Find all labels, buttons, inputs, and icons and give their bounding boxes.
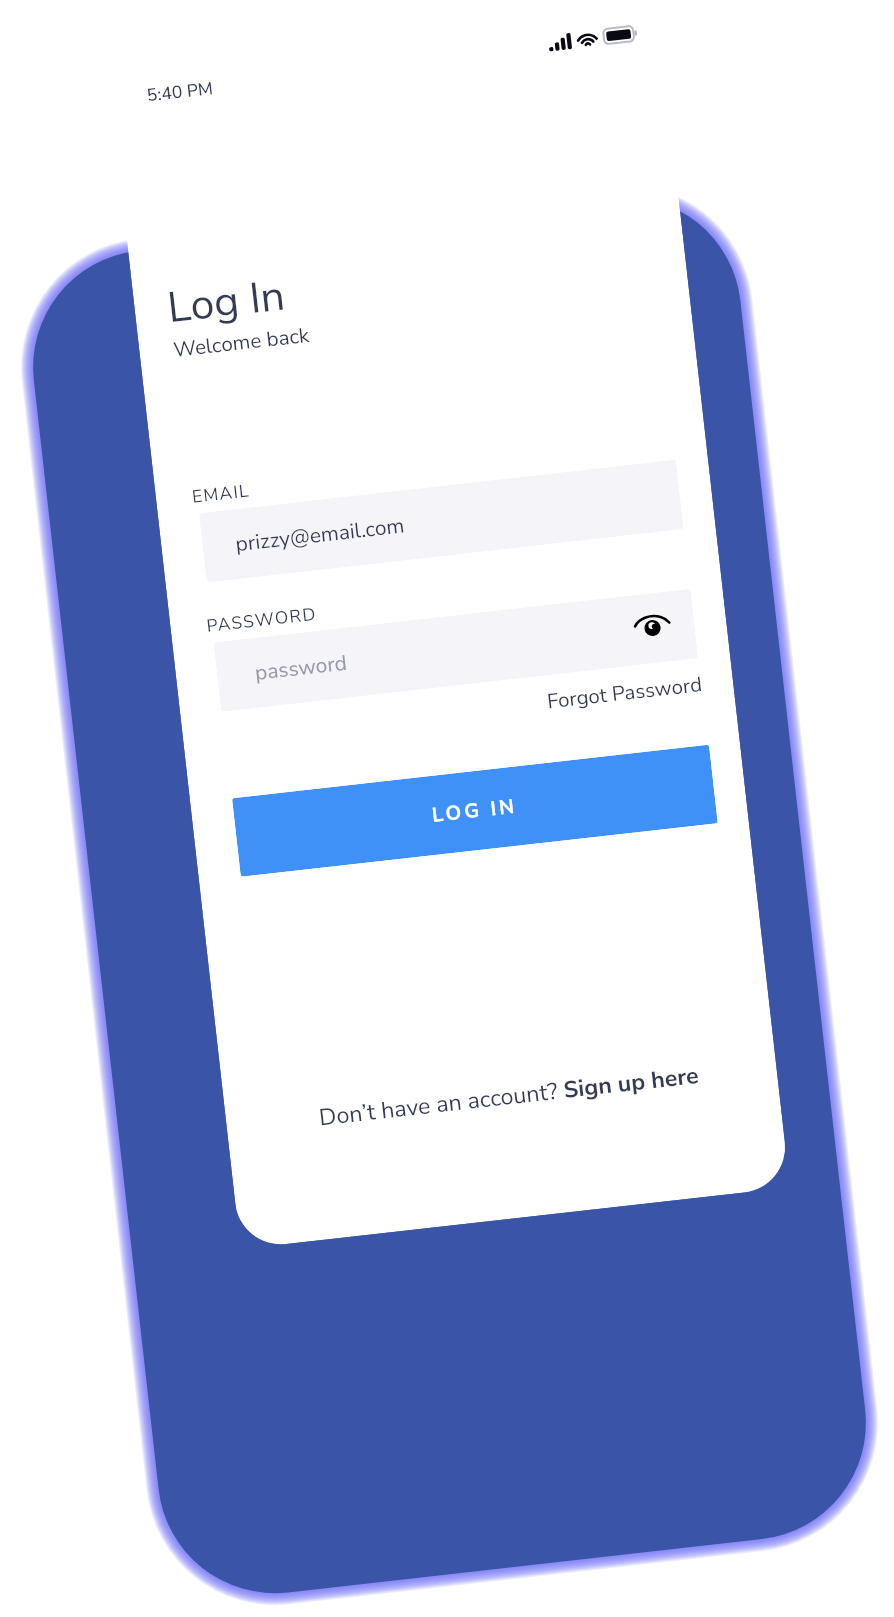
button[interactable]: Sign up here <box>562 1060 701 1107</box>
button[interactable]: prizzy@email.com <box>199 459 684 583</box>
staticText: Log In <box>164 266 288 337</box>
staticText: EMAIL <box>191 478 251 509</box>
staticText: Don’t have an account? <box>317 1075 565 1134</box>
button[interactable]: LOG IN <box>232 745 718 877</box>
staticText: password <box>253 649 349 688</box>
staticText: LOG IN <box>431 792 519 829</box>
staticText: prizzy@email.com <box>234 511 406 559</box>
staticText: 5:40 PM <box>145 76 215 107</box>
button[interactable]: password <box>213 589 698 712</box>
button[interactable]: Forgot Password <box>545 670 704 715</box>
button[interactable]: Show password <box>633 615 672 640</box>
staticText: PASSWORD <box>205 602 318 638</box>
staticText: Welcome back <box>172 321 311 364</box>
